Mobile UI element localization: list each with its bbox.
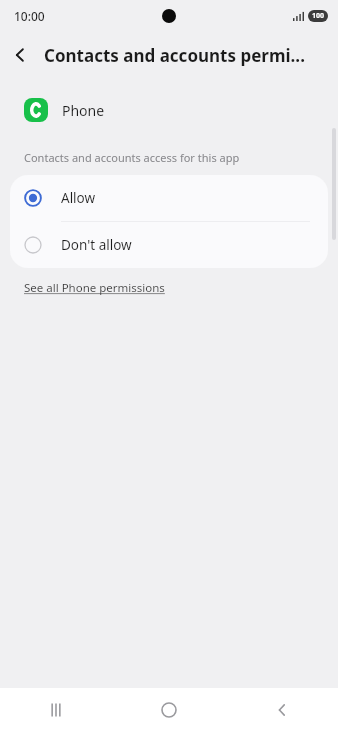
button[interactable]: See all Phone permissions bbox=[24, 280, 165, 296]
staticText: Phone bbox=[62, 101, 105, 120]
staticText: Allow bbox=[61, 189, 96, 207]
staticText: 100 bbox=[312, 11, 325, 21]
button[interactable]: Don't allow bbox=[10, 222, 328, 268]
button[interactable]: Allow bbox=[10, 175, 328, 221]
staticText: See all Phone permissions bbox=[24, 280, 165, 296]
staticText: Contacts and accounts access for this ap… bbox=[24, 150, 240, 165]
staticText: Contacts and accounts permi... bbox=[44, 44, 305, 67]
staticText: 10:00 bbox=[14, 8, 45, 24]
button[interactable]: Back bbox=[0, 35, 40, 75]
button[interactable]: Recents bbox=[0, 688, 112, 732]
button[interactable]: Home bbox=[112, 688, 225, 732]
button[interactable]: Back bbox=[225, 688, 338, 732]
staticText: Don't allow bbox=[61, 236, 132, 254]
